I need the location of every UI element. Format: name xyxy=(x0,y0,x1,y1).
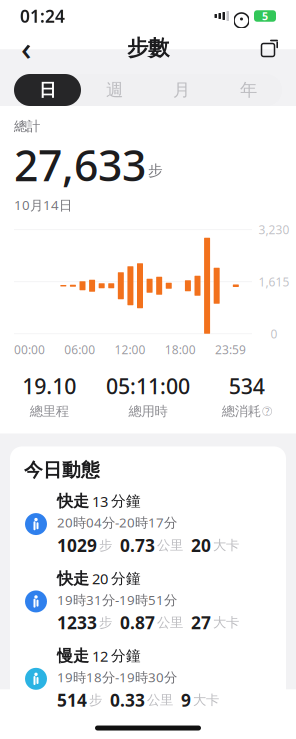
staticText: 1,615 xyxy=(258,274,289,290)
staticText: 514 xyxy=(57,688,87,711)
staticText: 快走 xyxy=(57,491,89,511)
staticText: 快走 xyxy=(57,569,89,588)
staticText: 週 xyxy=(106,79,123,101)
staticText: 大卡 xyxy=(193,692,219,708)
staticText: 0.87 xyxy=(120,611,155,634)
staticText: 06:00 xyxy=(64,342,95,358)
staticText: 年 xyxy=(240,79,257,101)
staticText: 公里 xyxy=(157,614,183,631)
staticText: 00:00 xyxy=(14,342,45,358)
staticText: 20時04分-20時17分 xyxy=(57,513,177,531)
staticText: ? xyxy=(265,405,269,417)
staticText: 慢走 xyxy=(57,646,89,666)
staticText: 總消耗 xyxy=(222,403,261,419)
staticText: ‹ xyxy=(21,27,31,69)
button[interactable]: 返回 xyxy=(10,32,42,64)
staticText: 20 xyxy=(92,569,108,588)
staticText: 27 xyxy=(191,611,211,634)
button[interactable]: 月 xyxy=(148,74,215,106)
button[interactable]: 快走 xyxy=(10,485,286,563)
button[interactable]: 快走 xyxy=(10,563,286,640)
button[interactable]: 慢走 xyxy=(10,640,286,717)
staticText: 12:00 xyxy=(114,342,145,358)
staticText: 公里 xyxy=(147,692,173,708)
staticText: 日 xyxy=(39,79,56,101)
staticText: 18:00 xyxy=(165,342,196,358)
staticText: 分鐘 xyxy=(111,492,141,510)
staticText: 步 xyxy=(99,614,112,631)
button[interactable]: 週 xyxy=(81,74,148,106)
button[interactable]: 分享 xyxy=(254,32,286,64)
staticText: 19時31分-19時51分 xyxy=(57,591,177,609)
button[interactable]: 年 xyxy=(215,74,282,106)
staticText: 27,633 xyxy=(14,136,146,193)
staticText: 1233 xyxy=(57,611,97,634)
staticText: 1029 xyxy=(57,534,97,557)
staticText: 12 xyxy=(92,646,108,666)
staticText: 總用時 xyxy=(128,403,167,419)
staticText: 分鐘 xyxy=(111,647,141,665)
staticText: 3,230 xyxy=(258,222,289,238)
staticText: 01:24 xyxy=(20,4,65,27)
staticText: 總計 xyxy=(14,118,40,134)
staticText: 0.73 xyxy=(120,534,155,557)
staticText: 步數 xyxy=(127,35,169,61)
staticText: 步 xyxy=(99,537,112,553)
staticText: 9 xyxy=(181,688,191,711)
staticText: 534 xyxy=(229,372,265,400)
staticText: 今日動態 xyxy=(24,458,100,481)
staticText: 步 xyxy=(89,692,102,708)
staticText: 大卡 xyxy=(213,537,239,553)
staticText: 20 xyxy=(191,534,211,557)
staticText: 步 xyxy=(148,162,163,180)
staticText: 23:59 xyxy=(215,342,246,358)
staticText: 0.33 xyxy=(110,688,145,711)
staticText: 19時18分-19時30分 xyxy=(57,668,177,686)
staticText: 大卡 xyxy=(213,614,239,631)
staticText: 月 xyxy=(173,79,190,101)
staticText: 05:11:00 xyxy=(106,372,190,400)
staticText: 10月14日 xyxy=(14,196,72,214)
staticText: 5 xyxy=(262,9,268,23)
staticText: 19.10 xyxy=(22,372,76,400)
button[interactable]: 日 xyxy=(14,74,81,106)
staticText: 13 xyxy=(92,491,108,511)
staticText: 總里程 xyxy=(30,403,69,419)
staticText: 0 xyxy=(270,326,277,342)
staticText: 公里 xyxy=(157,537,183,553)
staticText: 分鐘 xyxy=(111,570,141,588)
